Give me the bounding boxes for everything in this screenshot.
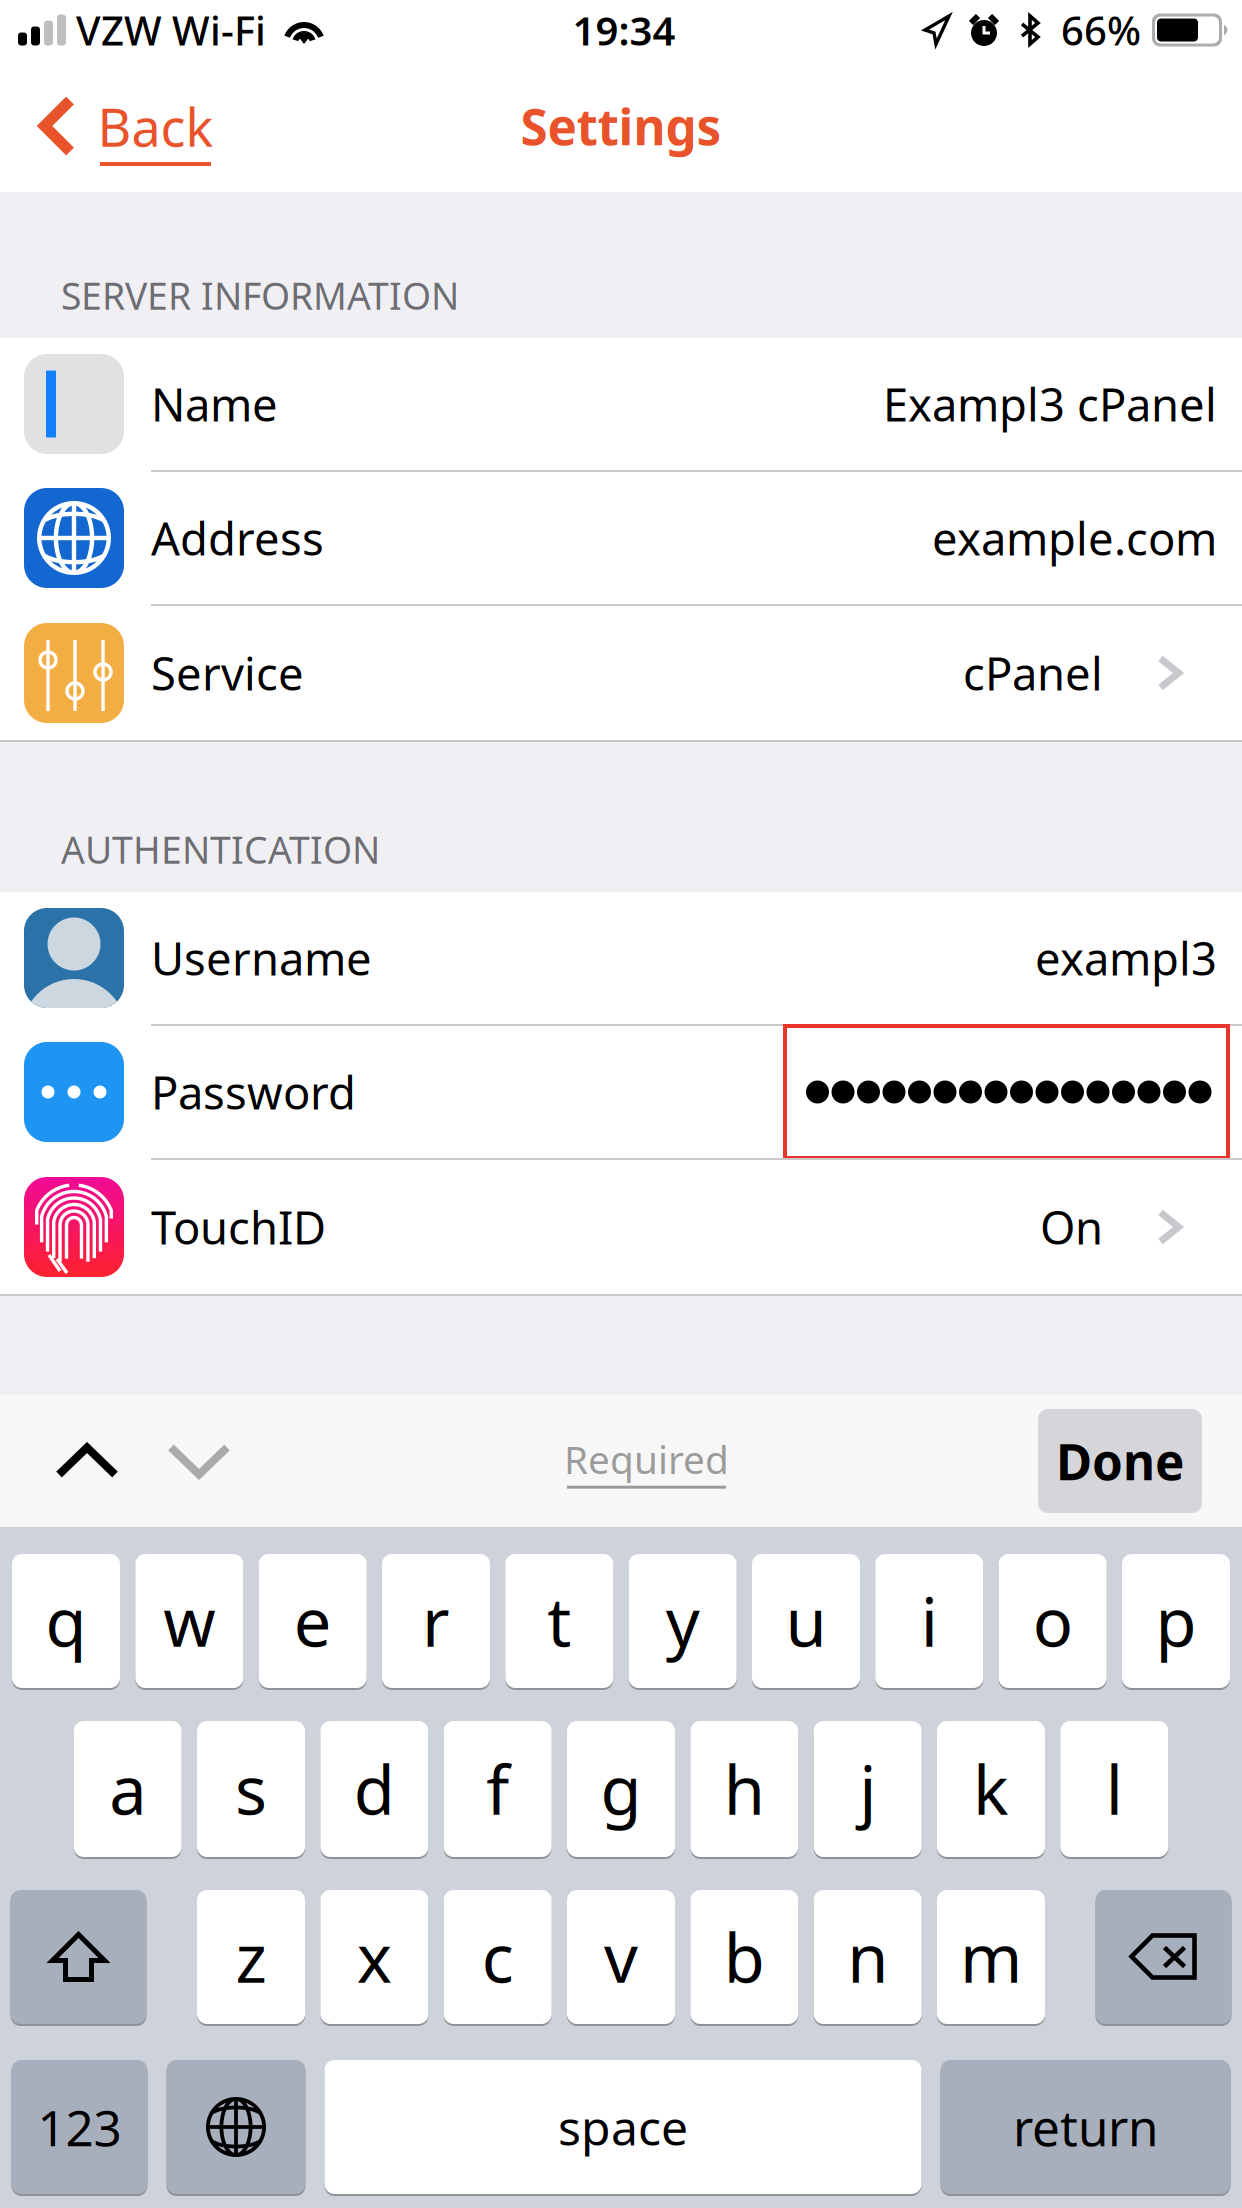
button[interactable]: h	[690, 1720, 798, 1858]
staticText: Name	[151, 374, 278, 434]
button[interactable]: y	[629, 1553, 737, 1689]
staticText: k	[973, 1745, 1009, 1833]
staticText: SERVER INFORMATION	[61, 270, 459, 320]
staticText: v	[604, 1913, 638, 2001]
staticText: l	[1106, 1745, 1123, 1833]
button[interactable]: s	[197, 1720, 305, 1858]
staticText: return	[1013, 2094, 1158, 2160]
staticText: z	[235, 1913, 266, 2001]
button[interactable]: Shift	[10, 1889, 146, 2025]
button[interactable]: Space	[324, 2059, 921, 2195]
button[interactable]: w	[135, 1553, 243, 1689]
button[interactable]: t	[505, 1553, 613, 1689]
button[interactable]: Return	[940, 2059, 1230, 2195]
staticText: q	[45, 1577, 86, 1665]
staticText: s	[235, 1745, 267, 1833]
staticText: p	[1155, 1577, 1196, 1665]
button[interactable]: k	[937, 1720, 1045, 1858]
staticText: Username	[151, 928, 372, 988]
staticText: Password	[151, 1062, 356, 1122]
staticText: On	[1040, 1197, 1103, 1257]
staticText: AUTHENTICATION	[61, 824, 380, 874]
button[interactable]: u	[752, 1553, 860, 1689]
button[interactable]: n	[814, 1889, 922, 2025]
button[interactable]: Password	[0, 1026, 1242, 1160]
staticText: Settings	[520, 93, 721, 159]
staticText: i	[921, 1577, 938, 1665]
staticText: 66%	[1061, 3, 1141, 56]
button[interactable]: Delete	[1095, 1889, 1231, 2025]
button[interactable]: a	[74, 1720, 182, 1858]
button[interactable]: l	[1060, 1720, 1168, 1858]
button[interactable]: q	[12, 1553, 120, 1689]
staticText: space	[558, 2095, 688, 2159]
button[interactable]: Username	[0, 892, 1242, 1026]
button[interactable]: r	[382, 1553, 490, 1689]
button[interactable]: o	[999, 1553, 1107, 1689]
button[interactable]: Previous field	[31, 1395, 143, 1527]
staticText: Address	[151, 508, 324, 568]
staticText: x	[357, 1913, 392, 2001]
button[interactable]: Next field	[143, 1395, 255, 1527]
staticText: t	[547, 1577, 571, 1665]
staticText: o	[1033, 1577, 1073, 1665]
staticText: Exampl3 cPanel	[883, 374, 1217, 434]
staticText: Service	[151, 643, 304, 703]
button[interactable]: d	[320, 1720, 428, 1858]
staticText: Done	[1056, 1428, 1184, 1494]
staticText: u	[785, 1577, 826, 1665]
staticText: cPanel	[963, 643, 1103, 703]
button[interactable]: m	[937, 1889, 1045, 2025]
button[interactable]: f	[444, 1720, 552, 1858]
button[interactable]: g	[567, 1720, 675, 1858]
staticText: Back	[97, 92, 213, 161]
staticText: 123	[37, 2094, 121, 2160]
staticText: TouchID	[151, 1197, 326, 1257]
button[interactable]: c	[444, 1889, 552, 2025]
button[interactable]: Address	[0, 472, 1242, 606]
button[interactable]: i	[875, 1553, 983, 1689]
button[interactable]: z	[197, 1889, 305, 2025]
button[interactable]: Next keyboard	[166, 2059, 305, 2195]
staticText: n	[847, 1913, 888, 2001]
staticText: Required	[564, 1433, 729, 1485]
staticText: g	[600, 1745, 641, 1833]
staticText: example.com	[932, 508, 1217, 568]
staticText: m	[960, 1913, 1022, 2001]
button[interactable]: b	[690, 1889, 798, 2025]
button[interactable]: Numbers	[11, 2059, 147, 2195]
staticText: exampl3	[1035, 928, 1217, 988]
button[interactable]: TouchID	[0, 1160, 1242, 1294]
staticText: r	[422, 1577, 450, 1665]
staticText: w	[163, 1577, 215, 1665]
staticText: c	[482, 1913, 514, 2001]
staticText: d	[354, 1745, 395, 1833]
button[interactable]: e	[259, 1553, 367, 1689]
button[interactable]: x	[320, 1889, 428, 2025]
button[interactable]: j	[814, 1720, 922, 1858]
staticText: a	[109, 1745, 146, 1833]
button[interactable]: Service	[0, 606, 1242, 740]
staticText: e	[294, 1577, 332, 1665]
staticText: j	[859, 1745, 876, 1833]
staticText: VZW Wi-Fi	[76, 3, 266, 56]
button[interactable]: p	[1122, 1553, 1230, 1689]
staticText: f	[486, 1745, 509, 1833]
button[interactable]: Done	[1038, 1409, 1202, 1513]
staticText: b	[724, 1913, 765, 2001]
button[interactable]: Name	[0, 338, 1242, 472]
staticText: y	[666, 1577, 700, 1665]
staticText: h	[724, 1745, 765, 1833]
button[interactable]: Back	[0, 60, 237, 192]
staticText: 19:34	[572, 3, 675, 56]
button[interactable]: v	[567, 1889, 675, 2025]
